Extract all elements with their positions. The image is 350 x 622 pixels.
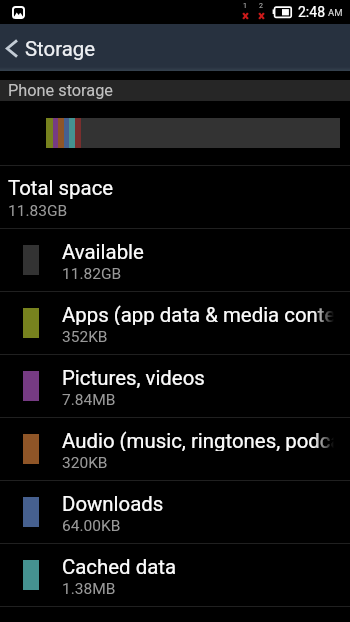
staticText: 2 bbox=[259, 2, 263, 10]
staticText: 1 bbox=[243, 2, 247, 10]
staticText: Available bbox=[62, 240, 144, 262]
staticText: AM bbox=[328, 7, 343, 18]
button[interactable]: Apps (app data & media content) bbox=[0, 292, 350, 354]
other: Back bbox=[1, 24, 23, 71]
staticText: 11.83GB bbox=[8, 202, 68, 220]
button[interactable]: Audio (music, ringtones, podcasts) bbox=[0, 418, 350, 480]
button[interactable]: Cached data bbox=[0, 544, 350, 606]
staticText: 352KB bbox=[62, 328, 108, 346]
staticText: Storage bbox=[25, 37, 96, 61]
button[interactable]: Downloads bbox=[0, 481, 350, 543]
staticText: Total space bbox=[8, 176, 114, 200]
button[interactable]: Pictures, videos bbox=[0, 355, 350, 417]
staticText: 64.00KB bbox=[62, 517, 121, 535]
staticText: Apps (app data & media content) bbox=[62, 303, 334, 325]
button[interactable]: Back bbox=[0, 24, 350, 71]
button[interactable]: Available bbox=[0, 229, 350, 291]
staticText: 2:48 bbox=[298, 4, 325, 20]
staticText: Pictures, videos bbox=[62, 366, 205, 388]
staticText: 11.82GB bbox=[62, 265, 122, 283]
staticText: Audio (music, ringtones, podcasts) bbox=[62, 429, 334, 451]
button[interactable]: Total space bbox=[0, 166, 350, 228]
staticText: 7.84MB bbox=[62, 391, 116, 409]
staticText: Cached data bbox=[62, 555, 176, 577]
staticText: 1.38MB bbox=[62, 580, 116, 598]
staticText: Phone storage bbox=[8, 81, 113, 100]
staticText: Downloads bbox=[62, 492, 164, 514]
staticText: 320KB bbox=[62, 454, 108, 472]
